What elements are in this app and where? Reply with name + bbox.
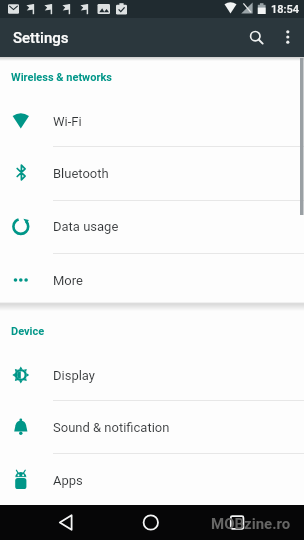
staticText: Device	[11, 325, 45, 338]
staticText: 18:54	[271, 3, 299, 16]
staticText: Display	[53, 368, 95, 383]
staticText: MOBzine.ro	[211, 515, 291, 533]
staticText: Settings	[13, 29, 69, 47]
button[interactable]: Apps	[0, 454, 304, 507]
staticText: More	[53, 273, 83, 288]
staticText: Bluetooth	[53, 166, 109, 181]
button[interactable]: Data usage	[0, 200, 304, 253]
button[interactable]	[209, 505, 265, 540]
button[interactable]	[275, 21, 302, 53]
staticText: Wi-Fi	[53, 114, 82, 129]
button[interactable]	[38, 505, 94, 540]
staticText: Data usage	[53, 219, 119, 234]
button[interactable]	[241, 21, 270, 53]
button[interactable]: Bluetooth	[0, 147, 304, 200]
button[interactable]	[123, 505, 179, 540]
button[interactable]: More	[0, 254, 304, 307]
staticText: Wireless & networks	[11, 71, 112, 84]
staticText: Apps	[53, 473, 83, 488]
button[interactable]: Display	[0, 349, 304, 402]
staticText: Sound & notification	[53, 420, 170, 435]
button[interactable]: Wi-Fi	[0, 95, 304, 148]
button[interactable]: Sound & notification	[0, 401, 304, 454]
